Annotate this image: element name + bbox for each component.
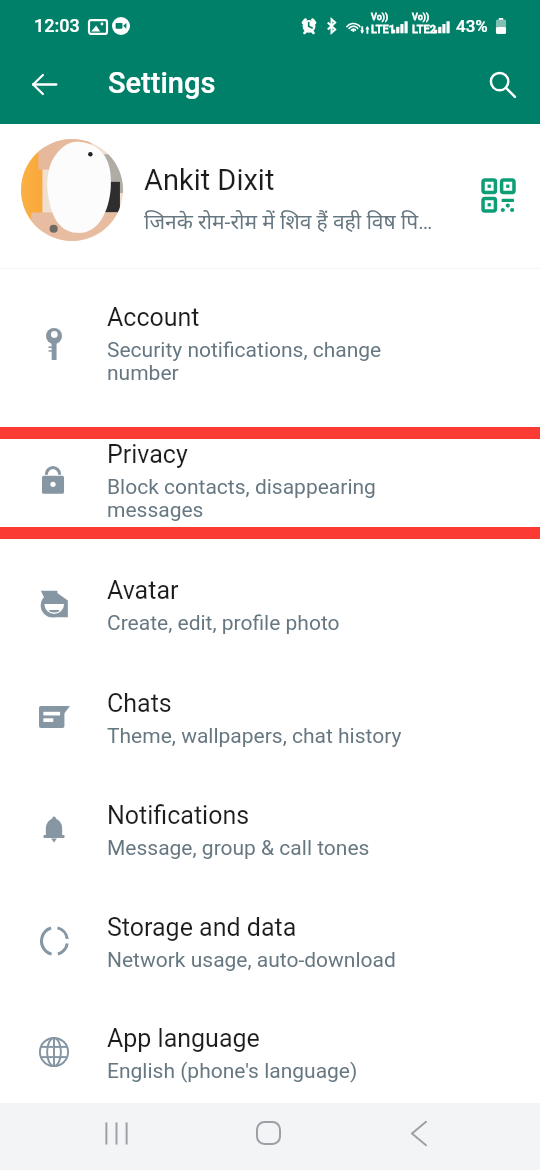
staticText: LTE2 [412,23,437,36]
staticText: Vo)) [412,12,430,23]
button[interactable]: Back [18,58,70,110]
staticText: Chats [107,689,172,718]
button[interactable]: Storage and data [0,896,540,992]
staticText: 12:03 [34,15,80,36]
staticText: App language [107,1024,260,1053]
staticText: Notifications [107,801,250,830]
button[interactable]: QR code [476,173,520,217]
staticText: Avatar [107,576,179,605]
button[interactable]: Ankit Dixit [0,124,540,267]
staticText: LTE1 [371,23,396,36]
button[interactable]: Home [240,1105,296,1161]
button[interactable]: Search [476,58,528,110]
staticText: Block contacts, disappearing messages [107,475,376,522]
staticText: Account [107,303,200,332]
staticText: Privacy [107,440,188,469]
button[interactable]: Avatar [0,559,540,655]
button[interactable]: Account [0,286,540,396]
staticText: Storage and data [107,913,297,942]
staticText: Ankit Dixit [144,163,275,197]
button[interactable]: App language [0,1007,540,1103]
staticText: English (phone's language) [107,1059,358,1084]
button[interactable]: Notifications [0,784,540,880]
staticText: Create, edit, profile photo [107,611,340,636]
staticText: 43% [456,16,488,36]
staticText: Vo)) [371,12,389,23]
staticText: Security notifications, change number [107,338,382,385]
button[interactable]: Back [391,1105,447,1161]
staticText: Network usage, auto-download [107,948,396,973]
button[interactable]: Recent apps [88,1105,144,1161]
button[interactable]: Chats [0,672,540,768]
button[interactable]: Privacy [0,423,540,533]
staticText: Message, group & call tones [107,836,370,861]
staticText: Settings [108,66,216,100]
staticText: जिनके रोम-रोम में शिव हैं वही विष पि… [144,207,444,236]
staticText: Theme, wallpapers, chat history [107,724,402,749]
